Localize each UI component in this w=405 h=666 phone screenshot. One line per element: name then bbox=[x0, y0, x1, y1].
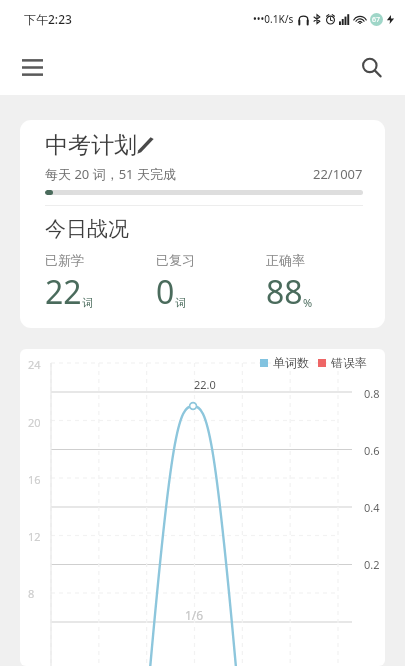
staticText: 0.4 bbox=[364, 500, 380, 515]
button[interactable]: Menu bbox=[10, 45, 54, 89]
staticText: 22.0 bbox=[194, 377, 216, 392]
button[interactable]: 单词数 bbox=[20, 349, 385, 666]
button[interactable]: Search bbox=[349, 45, 393, 89]
staticText: 错误率 bbox=[331, 355, 367, 370]
staticText: 0.2 bbox=[364, 557, 380, 572]
staticText: % bbox=[303, 295, 313, 310]
staticText: 22 bbox=[45, 270, 82, 314]
staticText: 每天 20 词，51 天完成 bbox=[45, 165, 176, 183]
staticText: 正确率 bbox=[266, 252, 305, 268]
staticText: 67 bbox=[372, 15, 381, 25]
staticText: 已新学 bbox=[45, 252, 84, 268]
staticText: 22/1007 bbox=[313, 165, 363, 183]
staticText: 词 bbox=[175, 296, 186, 310]
staticText: 今日战况 bbox=[45, 216, 129, 242]
staticText: 12 bbox=[28, 529, 41, 544]
button[interactable]: 中考计划 bbox=[20, 120, 385, 328]
staticText: 16 bbox=[28, 472, 41, 487]
staticText: 词 bbox=[82, 296, 93, 310]
staticText: 1/6 bbox=[185, 607, 204, 623]
staticText: 下午2:23 bbox=[24, 11, 72, 27]
staticText: 0.6 bbox=[364, 443, 380, 458]
staticText: 已复习 bbox=[156, 252, 195, 268]
staticText: 20 bbox=[28, 415, 41, 430]
staticText: 0.8 bbox=[364, 386, 380, 401]
staticText: 88 bbox=[266, 270, 303, 314]
staticText: 中考计划 bbox=[45, 131, 137, 160]
staticText: 0 bbox=[156, 270, 175, 314]
staticText: 8 bbox=[28, 586, 35, 601]
staticText: 24 bbox=[28, 357, 41, 372]
staticText: 单词数 bbox=[273, 355, 309, 370]
staticText: •••0.1K/s bbox=[253, 12, 294, 26]
